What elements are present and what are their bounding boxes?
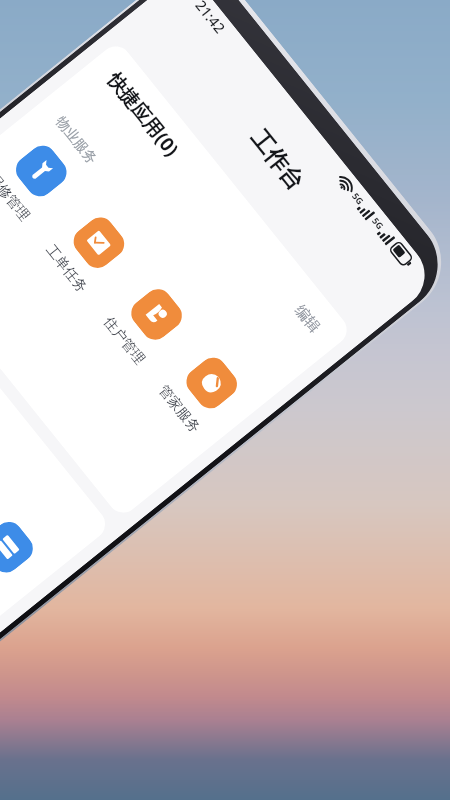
staticText: 工作台 (244, 124, 310, 196)
other: 住户管理 (138, 296, 175, 333)
staticText: 快捷应用(0) (102, 67, 185, 162)
staticText: 5G (350, 190, 367, 207)
other: 工单任务 (81, 224, 117, 261)
other: 报修管理 (23, 153, 60, 189)
staticText: 21:42 (191, 0, 231, 38)
button[interactable]: 工单任务 (30, 193, 145, 310)
button[interactable]: 编辑 (288, 299, 327, 339)
staticText: 工单任务 (42, 241, 91, 296)
other: 管家服务 (193, 365, 230, 401)
other: 功能 (0, 529, 26, 565)
staticText: 管家服务 (154, 382, 203, 437)
button[interactable]: 住户管理 (88, 265, 202, 382)
button[interactable]: 功能 (0, 501, 50, 611)
staticText: 住户管理 (99, 313, 148, 368)
button[interactable]: 管家服务 (146, 336, 255, 447)
staticText: 5G (370, 215, 387, 232)
staticText: 报修管理 (0, 170, 33, 225)
button[interactable]: 报修管理 (0, 121, 87, 239)
staticText: 编辑 (290, 301, 324, 337)
staticText: 物业服务 (51, 113, 100, 168)
